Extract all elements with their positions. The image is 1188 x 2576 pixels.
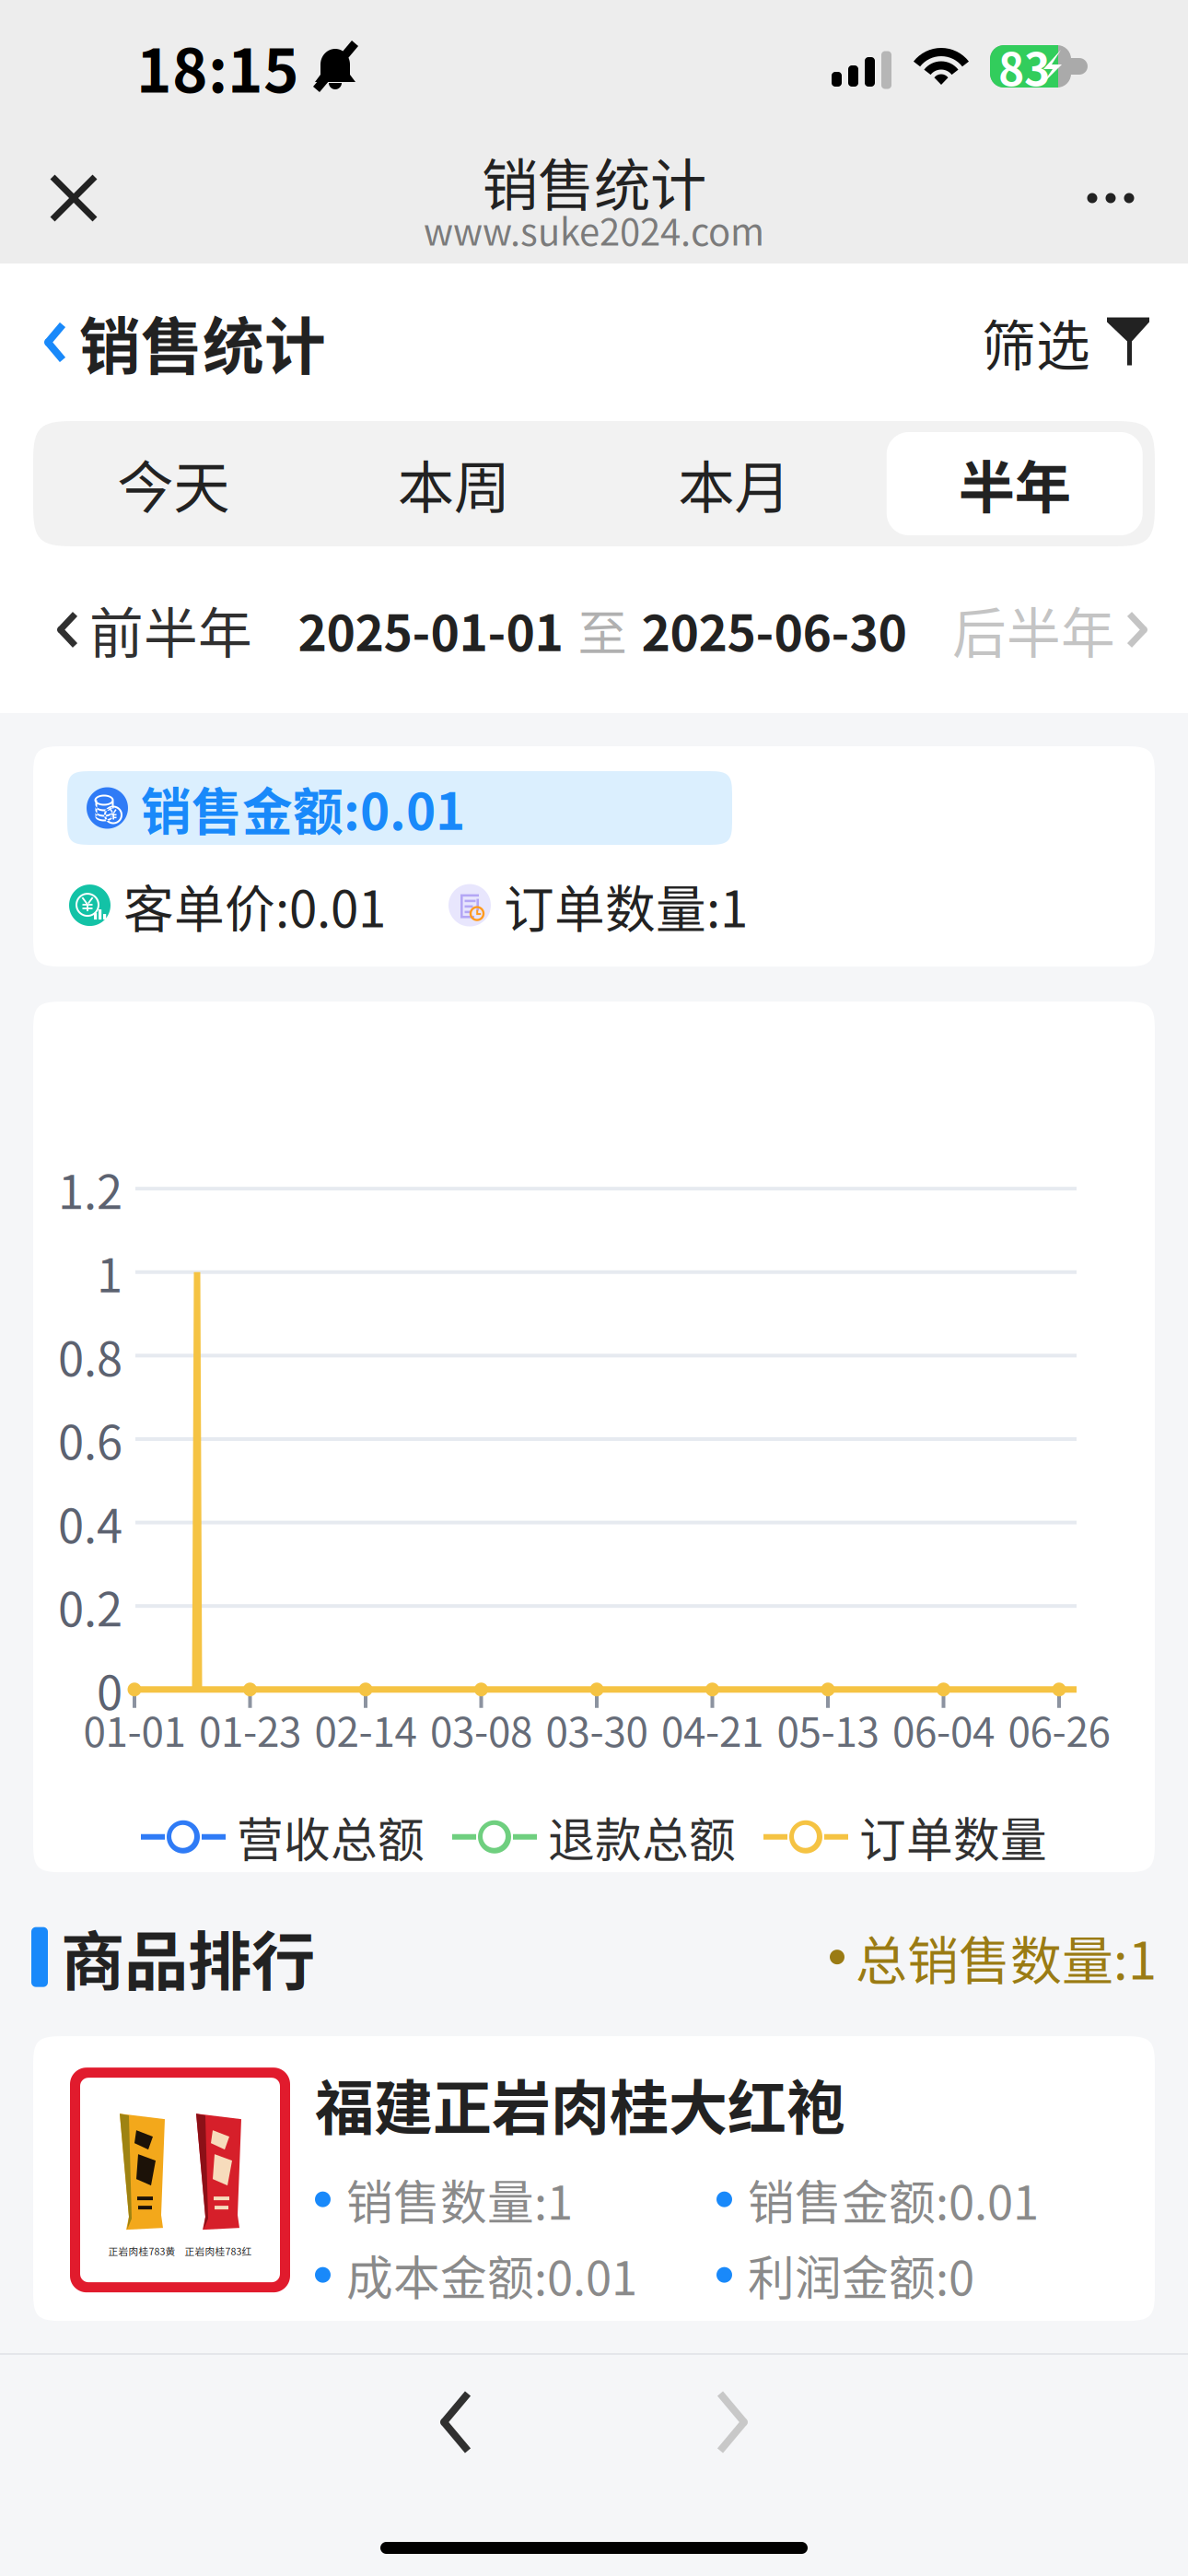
staticText: 0.2 — [58, 1572, 122, 1640]
staticText: 0.8 — [58, 1322, 122, 1389]
staticText: 1 — [97, 1238, 122, 1306]
button[interactable]: Next page — [668, 2371, 797, 2473]
staticText: 2025-06-30 — [641, 594, 907, 665]
staticText: 1.2 — [58, 1155, 122, 1222]
staticText: 福建正岩肉桂大红袍 — [315, 2061, 845, 2146]
staticText: 0.4 — [58, 1489, 122, 1556]
staticText: 客单价:0.01 — [123, 869, 386, 942]
staticText: 今天 — [117, 443, 229, 525]
staticText: 销售统计 — [79, 298, 326, 387]
staticText: 01-23 — [199, 1700, 301, 1758]
staticText: 0 — [97, 1656, 122, 1723]
button[interactable]: More — [1065, 152, 1157, 244]
staticText: 05-13 — [777, 1700, 879, 1758]
staticText: 01-01 — [83, 1700, 186, 1758]
button[interactable]: 正岩肉桂783黄 — [33, 2036, 1155, 2321]
staticText: 销售金额:0.01 — [748, 2166, 1039, 2233]
staticText: www.suke2024.com — [424, 203, 764, 256]
staticText: 02-14 — [314, 1700, 417, 1758]
button[interactable]: Previous page — [391, 2371, 520, 2473]
button[interactable]: 筛选 — [982, 303, 1151, 381]
button[interactable]: 本月 — [594, 421, 874, 546]
staticText: 后半年 — [952, 591, 1115, 669]
button[interactable]: 销售统计 — [44, 298, 326, 387]
staticText: 0.6 — [58, 1405, 122, 1473]
staticText: 营收总额 — [237, 1803, 425, 1871]
staticText: 商品排行 — [61, 1911, 315, 2003]
staticText: 利润金额:0 — [748, 2241, 974, 2309]
staticText: 前半年 — [89, 591, 252, 669]
staticText: 03-30 — [546, 1700, 648, 1758]
button[interactable]: 前半年 — [57, 591, 252, 669]
staticText: 销售金额:0.01 — [141, 772, 465, 844]
staticText: 订单数量:1 — [504, 869, 748, 942]
button[interactable]: 后半年 — [952, 591, 1147, 669]
staticText: 至 — [578, 594, 627, 665]
staticText: 本月 — [678, 443, 790, 525]
staticText: 筛选 — [982, 303, 1090, 381]
staticText: 销售数量:1 — [346, 2166, 573, 2233]
button[interactable]: Close — [28, 152, 120, 244]
staticText: 正岩肉桂783红 — [185, 2244, 252, 2258]
staticText: 退款总额 — [548, 1803, 736, 1871]
staticText: 06-26 — [1008, 1700, 1110, 1758]
button[interactable]: 今天 — [33, 421, 314, 546]
staticText: 正岩肉桂783黄 — [108, 2244, 175, 2258]
staticText: 18:15 — [136, 23, 299, 110]
staticText: 成本金额:0.01 — [346, 2241, 637, 2309]
button[interactable]: 本周 — [314, 421, 594, 546]
staticText: 2025-01-01 — [298, 594, 563, 665]
staticText: 销售统计 — [482, 141, 706, 222]
staticText: 半年 — [959, 443, 1071, 525]
staticText: 04-21 — [661, 1700, 763, 1758]
staticText: 83 — [998, 34, 1050, 98]
staticText: 03-08 — [430, 1700, 532, 1758]
staticText: 06-04 — [892, 1700, 995, 1758]
button[interactable]: 半年 — [874, 421, 1155, 546]
staticText: 订单数量 — [859, 1803, 1047, 1871]
staticText: 总销售数量:1 — [856, 1920, 1157, 1994]
staticText: 本周 — [398, 443, 510, 525]
